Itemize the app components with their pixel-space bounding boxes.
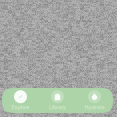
staticText: Hydrate (84, 104, 104, 111)
button[interactable]: Explore (2, 90, 39, 111)
staticText: Explore (11, 104, 29, 111)
button[interactable]: Library (39, 90, 76, 111)
button[interactable]: Hydrate (76, 90, 113, 111)
staticText: Library (49, 104, 66, 111)
